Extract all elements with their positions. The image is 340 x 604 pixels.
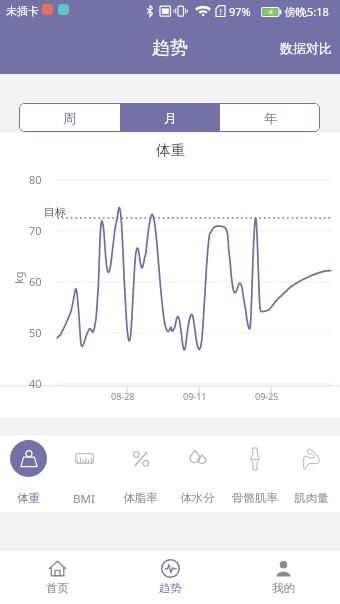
staticText: 数据对比: [280, 40, 332, 56]
button[interactable]: 体水分: [169, 435, 226, 512]
staticText: 09-25: [255, 390, 279, 402]
staticText: 08-28: [111, 390, 135, 402]
button[interactable]: 首页: [0, 550, 114, 604]
staticText: 70: [29, 223, 42, 238]
staticText: 目标: [44, 205, 66, 219]
staticText: BMI: [73, 491, 95, 507]
staticText: 周: [63, 110, 76, 126]
button[interactable]: 数据对比: [272, 26, 340, 70]
staticText: 月: [164, 110, 177, 126]
button[interactable]: 骨骼肌率: [226, 435, 283, 512]
staticText: 年: [264, 110, 277, 126]
staticText: 趋势: [159, 581, 182, 595]
staticText: 体脂率: [123, 491, 158, 505]
button[interactable]: 年: [220, 103, 320, 132]
staticText: 80: [29, 172, 42, 187]
staticText: 50: [29, 325, 42, 340]
staticText: 40: [29, 376, 42, 391]
staticText: 09-11: [183, 390, 207, 402]
button[interactable]: 我的: [227, 550, 340, 604]
staticText: 97%: [229, 4, 251, 19]
button[interactable]: BMI: [56, 435, 112, 512]
button[interactable]: 肌肉量: [283, 435, 340, 512]
staticText: kg: [11, 271, 26, 284]
staticText: 傍晚5:18: [285, 4, 329, 19]
staticText: 未插卡: [6, 4, 39, 18]
button[interactable]: 体脂率: [112, 435, 169, 512]
staticText: 体重: [17, 491, 40, 505]
staticText: 60: [29, 274, 42, 289]
staticText: 体重: [156, 141, 185, 159]
button[interactable]: 趋势: [114, 550, 227, 604]
staticText: 骨骼肌率: [232, 491, 278, 505]
staticText: 我的: [272, 581, 295, 595]
button[interactable]: 月: [120, 103, 220, 132]
staticText: 首页: [46, 581, 69, 595]
staticText: 肌肉量: [294, 491, 329, 505]
button[interactable]: 体重: [0, 435, 56, 512]
staticText: 体水分: [180, 491, 215, 505]
staticText: 趋势: [152, 37, 188, 60]
button[interactable]: 周: [19, 103, 120, 132]
